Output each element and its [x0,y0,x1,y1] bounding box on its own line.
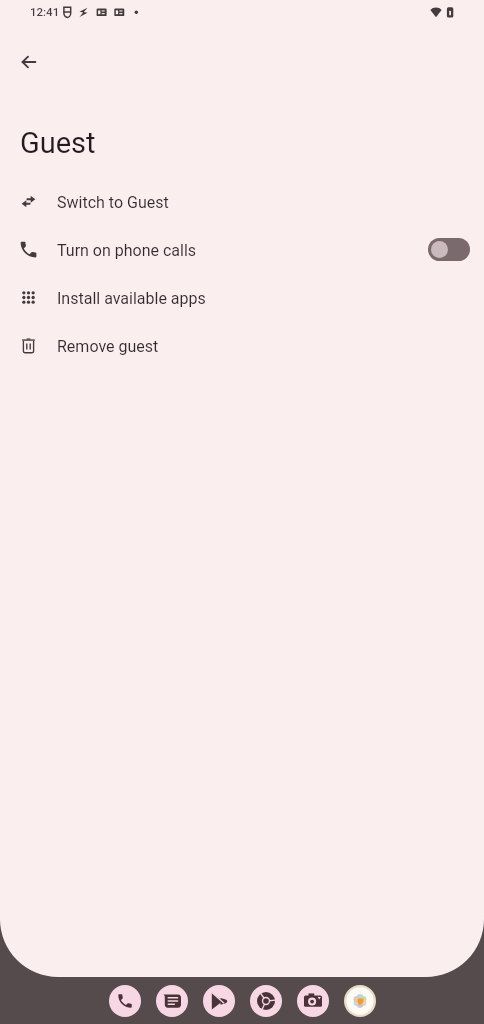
button[interactable]: Messages [156,985,188,1017]
button[interactable]: Turn on phone calls toggle [428,238,470,261]
button[interactable]: Play Store [203,985,235,1017]
staticText: Remove guest [57,337,159,356]
button[interactable]: Remove guest [0,321,484,369]
button[interactable]: Camera [297,985,329,1017]
button[interactable]: Switch to Guest [0,177,484,225]
button[interactable]: Phone [109,985,141,1017]
button[interactable]: Turn on phone calls [0,225,484,273]
button[interactable]: Install available apps [0,273,484,321]
button[interactable]: Chrome [250,985,282,1017]
staticText: 12:41 [30,5,60,18]
button[interactable]: Back [9,42,49,82]
staticText: Guest [20,126,96,160]
staticText: Turn on phone calls [57,241,197,260]
staticText: Install available apps [57,289,206,308]
button[interactable]: Photos [344,985,376,1017]
staticText: Switch to Guest [57,193,169,212]
